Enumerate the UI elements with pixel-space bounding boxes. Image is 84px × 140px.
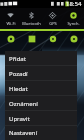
staticText: GPS [49,21,57,26]
staticText: Pozadí [9,70,28,78]
button[interactable]: Synch. [63,8,84,31]
button[interactable]: GPS [42,8,63,31]
staticText: Synch. [67,21,80,26]
staticText: Hledat [9,85,28,93]
staticText: Bluetooth [22,21,41,26]
staticText: Oznámení [9,100,38,108]
button[interactable]: Nastavení [5,126,77,140]
staticText: Upravit [9,115,30,123]
staticText: 18:54 [66,0,82,8]
staticText: Nastavení [9,129,38,137]
button[interactable]: Bluetooth [21,8,42,31]
button[interactable]: Hledat [5,81,77,96]
button[interactable]: App 3 [42,33,63,44]
staticText: Wi-Fi [6,21,16,26]
button[interactable]: App 4 [63,33,84,44]
button[interactable]: Wi-Fi [0,8,21,31]
button[interactable]: Pozadí [5,66,77,81]
button[interactable]: App 2 [21,33,42,44]
staticText: Přidat [9,55,26,63]
button[interactable]: Přidat [5,51,77,66]
button[interactable]: Oznámení [5,96,77,111]
button[interactable]: Upravit [5,111,77,126]
button[interactable]: App 1 [0,33,21,44]
